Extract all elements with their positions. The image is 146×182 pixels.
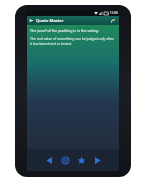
staticText: The real value of something can be judge… bbox=[30, 36, 116, 46]
staticText: The proof of the pudding is in the eatin… bbox=[30, 28, 100, 33]
staticText: 11:04 bbox=[110, 11, 118, 15]
button[interactable]: Next quote bbox=[90, 152, 104, 168]
button[interactable]: Previous quote bbox=[42, 152, 56, 168]
staticText: Quote Master bbox=[36, 18, 109, 23]
button[interactable]: Favorite bbox=[74, 152, 88, 168]
button[interactable]: Quote Master bbox=[27, 16, 119, 25]
button[interactable]: Share quote bbox=[109, 17, 117, 25]
button[interactable]: Random quote bbox=[58, 152, 72, 168]
